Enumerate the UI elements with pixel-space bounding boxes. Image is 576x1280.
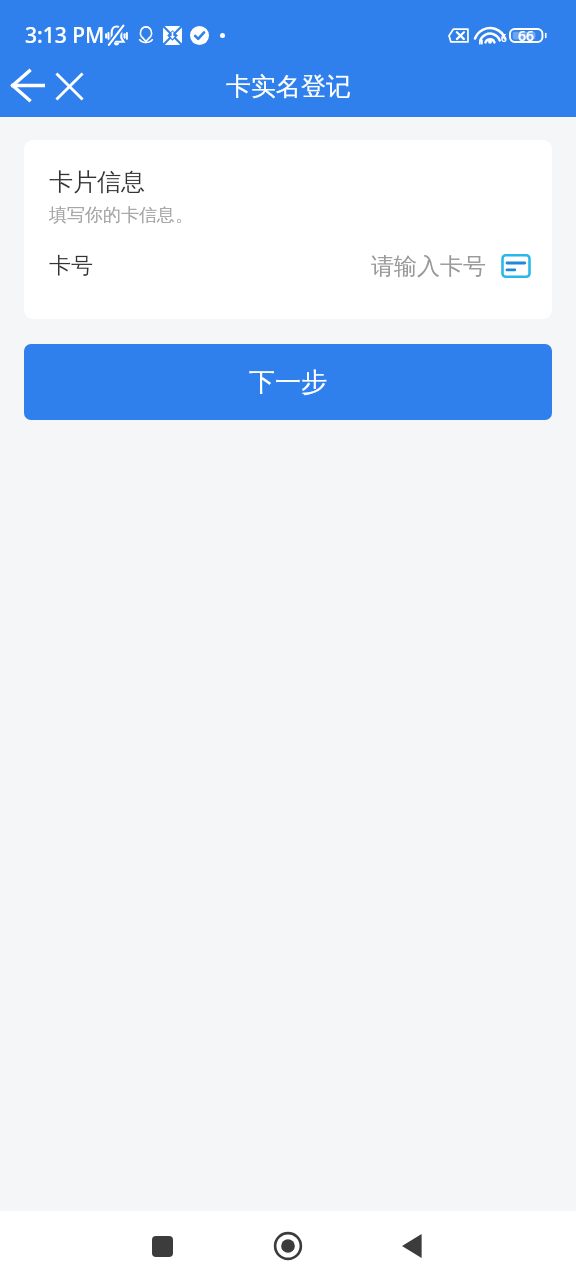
- staticText: 6: [501, 31, 507, 45]
- button[interactable]: 卡号: [24, 236, 552, 296]
- staticText: 卡号: [49, 252, 93, 280]
- staticText: 卡片信息: [49, 167, 145, 197]
- staticText: 下一步: [249, 366, 327, 399]
- button[interactable]: Back: [4, 61, 52, 113]
- staticText: 请输入卡号: [371, 252, 486, 281]
- button[interactable]: Scan card: [501, 251, 531, 281]
- button[interactable]: Recents: [134, 1218, 190, 1274]
- button[interactable]: 下一步: [24, 344, 552, 420]
- staticText: 3:13 PM: [25, 21, 105, 50]
- button[interactable]: Home: [260, 1218, 316, 1274]
- staticText: 卡实名登记: [226, 71, 351, 102]
- button[interactable]: Close: [48, 61, 92, 113]
- staticText: 填写你的卡信息。: [49, 204, 193, 227]
- button[interactable]: Back: [384, 1218, 440, 1274]
- staticText: 66: [518, 26, 535, 45]
